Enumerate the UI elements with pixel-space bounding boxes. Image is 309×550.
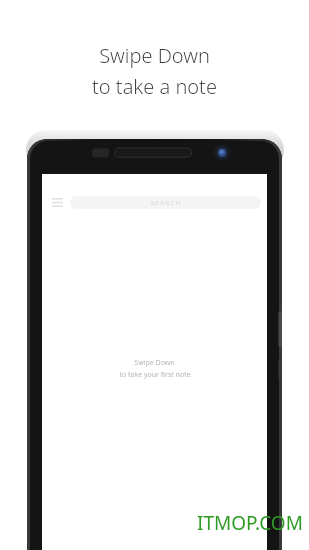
button[interactable]: Open navigation menu [48, 193, 66, 211]
staticText: Swipe Down [99, 42, 210, 69]
staticText: SEARCH [150, 199, 182, 207]
staticText: ITMOP.COM [197, 510, 303, 536]
staticText: Swipe Down [134, 358, 175, 368]
staticText: to take your first note [119, 370, 191, 380]
staticText: to take a note [92, 73, 217, 100]
